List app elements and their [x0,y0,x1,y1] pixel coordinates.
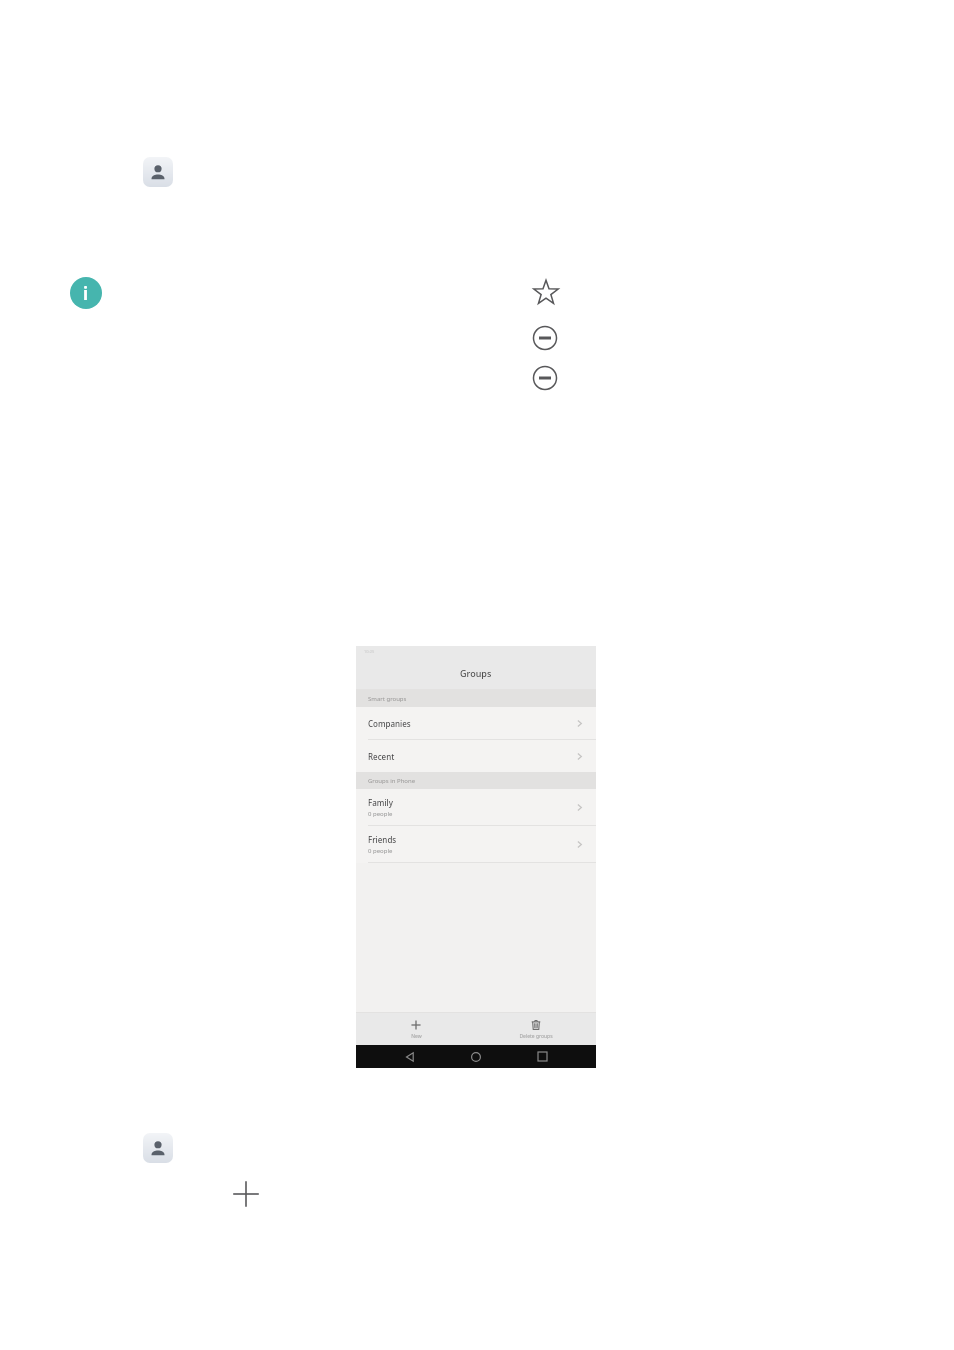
staticText: i [83,282,89,305]
button[interactable]: Contact [143,157,173,187]
staticText: Family [368,797,393,808]
button[interactable]: Friends [356,826,596,862]
button[interactable]: Recents [530,1045,554,1068]
button[interactable]: Remove [529,362,561,394]
staticText: 0 people [368,810,393,818]
button[interactable]: Remove [529,322,561,354]
staticText: 10:25 [364,649,375,654]
button[interactable]: Info [70,277,102,309]
staticText: Smart groups [368,695,407,703]
staticText: Groups in Phone [368,777,416,785]
button[interactable]: Family [356,789,596,825]
staticText: Recent [368,751,395,762]
button[interactable]: Companies [356,707,596,739]
button[interactable]: Contact [143,1133,173,1163]
staticText: Friends [368,834,397,845]
button[interactable]: New [356,1013,476,1045]
staticText: New [411,1033,422,1040]
staticText: Delete groups [519,1033,553,1040]
button[interactable]: Delete groups [476,1013,596,1045]
button[interactable]: Add [230,1178,262,1210]
staticText: Companies [368,718,411,729]
button[interactable]: Home [464,1045,488,1068]
staticText: 0 people [368,847,393,855]
staticText: Groups [460,667,492,679]
button[interactable]: Recent [356,740,596,772]
button[interactable]: Favorite [530,277,562,309]
button[interactable]: Back [398,1045,422,1068]
